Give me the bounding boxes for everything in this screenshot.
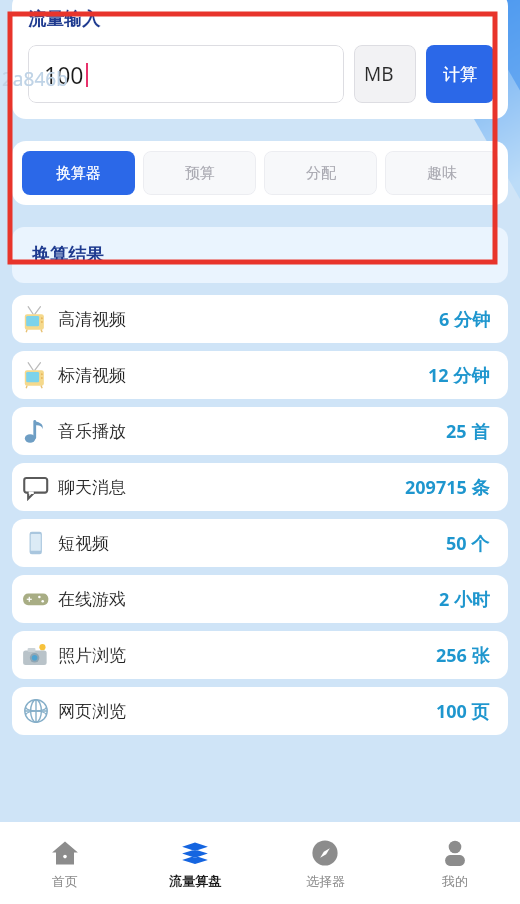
button[interactable]: 100 bbox=[28, 45, 344, 103]
staticText: 短视频 bbox=[58, 533, 109, 554]
staticText: 音乐播放 bbox=[58, 421, 126, 442]
staticText: 2 小时 bbox=[439, 587, 490, 612]
button[interactable]: 趣味 bbox=[385, 151, 498, 195]
staticText: 标清视频 bbox=[58, 365, 126, 386]
staticText: MB bbox=[364, 61, 394, 87]
staticText: 换算结果 bbox=[32, 244, 104, 267]
staticText: 25 首 bbox=[446, 419, 490, 444]
staticText: 50 个 bbox=[446, 531, 490, 556]
staticText: 6 分钟 bbox=[439, 307, 490, 332]
staticText: 高清视频 bbox=[58, 309, 126, 330]
button[interactable]: 换算器 bbox=[22, 151, 135, 195]
staticText: 256 张 bbox=[436, 643, 490, 668]
button[interactable]: 高清视频 bbox=[12, 295, 508, 343]
button[interactable]: 在线游戏 bbox=[12, 575, 508, 623]
staticText: 照片浏览 bbox=[58, 645, 126, 666]
staticText: 流量输入 bbox=[28, 8, 100, 31]
staticText: 分配 bbox=[306, 164, 336, 183]
button[interactable]: 短视频 bbox=[12, 519, 508, 567]
staticText: 计算 bbox=[443, 64, 477, 85]
button[interactable]: 首页 bbox=[0, 822, 130, 904]
button[interactable]: 照片浏览 bbox=[12, 631, 508, 679]
staticText: 100 bbox=[44, 59, 84, 90]
button[interactable]: 网页浏览 bbox=[12, 687, 508, 735]
staticText: 首页 bbox=[52, 873, 78, 889]
staticText: 预算 bbox=[185, 164, 215, 183]
staticText: 209715 条 bbox=[405, 475, 490, 500]
staticText: 换算器 bbox=[56, 164, 101, 183]
staticText: 100 页 bbox=[436, 699, 490, 724]
button[interactable]: 计算 bbox=[426, 45, 494, 103]
staticText: 2a846b bbox=[2, 66, 68, 92]
button[interactable]: 我的 bbox=[390, 822, 520, 904]
button[interactable]: 分配 bbox=[264, 151, 377, 195]
button[interactable]: 标清视频 bbox=[12, 351, 508, 399]
button[interactable]: MB bbox=[354, 45, 416, 103]
staticText: 选择器 bbox=[306, 873, 345, 889]
staticText: 网页浏览 bbox=[58, 701, 126, 722]
button[interactable]: 选择器 bbox=[260, 822, 390, 904]
button[interactable]: 流量算盘 bbox=[130, 822, 260, 904]
button[interactable]: 聊天消息 bbox=[12, 463, 508, 511]
staticText: 我的 bbox=[442, 873, 468, 889]
staticText: 趣味 bbox=[427, 164, 457, 183]
staticText: 聊天消息 bbox=[58, 477, 126, 498]
staticText: 12 分钟 bbox=[428, 363, 490, 388]
staticText: 流量算盘 bbox=[169, 873, 221, 889]
button[interactable]: 音乐播放 bbox=[12, 407, 508, 455]
staticText: 在线游戏 bbox=[58, 589, 126, 610]
button[interactable]: 预算 bbox=[143, 151, 256, 195]
